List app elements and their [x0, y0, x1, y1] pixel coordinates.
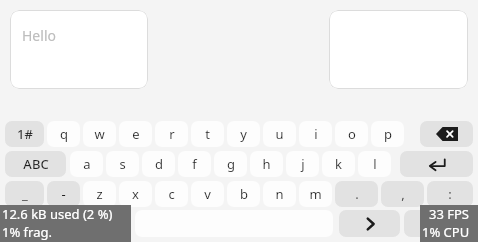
button[interactable]: q [47, 121, 80, 147]
button[interactable]: , [381, 181, 424, 207]
button[interactable]: Done [404, 210, 473, 237]
button[interactable]: m [299, 181, 332, 207]
staticText: s [119, 155, 126, 173]
button[interactable]: o [335, 121, 368, 147]
button[interactable]: c [155, 181, 188, 207]
button[interactable]: p [371, 121, 404, 147]
staticText: - [61, 185, 66, 203]
button[interactable]: f [178, 151, 211, 177]
button[interactable]: Enter [400, 151, 473, 177]
button[interactable]: 1# [5, 121, 44, 147]
button[interactable]: ABC [5, 151, 66, 177]
staticText: 33 FPS [429, 205, 470, 223]
button[interactable]: d [142, 151, 175, 177]
staticText: b [240, 185, 248, 203]
button[interactable]: _ [5, 181, 44, 207]
button[interactable]: w [83, 121, 116, 147]
staticText: c [168, 185, 175, 203]
button[interactable]: Previous [47, 210, 131, 237]
button[interactable]: r [155, 121, 188, 147]
staticText: z [96, 185, 103, 203]
staticText: w [94, 125, 105, 143]
staticText: t [205, 125, 210, 143]
staticText: a [83, 155, 91, 173]
staticText: l [373, 155, 377, 173]
button[interactable]: v [191, 181, 224, 207]
staticText: 1% CPU [422, 223, 470, 241]
staticText: j [301, 155, 305, 173]
button[interactable]: Hello [10, 10, 148, 89]
button[interactable]: - [47, 181, 80, 207]
staticText: n [275, 185, 284, 203]
staticText: _ [22, 185, 28, 203]
button[interactable]: : [427, 181, 473, 207]
staticText: f [192, 155, 197, 173]
button[interactable]: e [119, 121, 152, 147]
staticText: k [335, 155, 342, 173]
button[interactable]: y [227, 121, 260, 147]
button[interactable]: Switch keyboard [5, 210, 44, 237]
staticText: d [155, 155, 163, 173]
button[interactable]: . [335, 181, 378, 207]
button[interactable]: s [106, 151, 139, 177]
button[interactable]: j [286, 151, 319, 177]
staticText: g [227, 155, 235, 173]
staticText: x [132, 185, 139, 203]
staticText: 1% frag. [2, 223, 52, 241]
staticText: v [204, 185, 211, 203]
button[interactable]: z [83, 181, 116, 207]
staticText: . [355, 185, 359, 203]
staticText: : [448, 185, 452, 203]
staticText: o [348, 125, 356, 143]
staticText: , [401, 185, 405, 203]
button[interactable]: g [214, 151, 247, 177]
staticText: 1# [17, 125, 33, 143]
staticText: y [240, 125, 247, 143]
staticText: 12.6 kB used (2 %) [2, 205, 113, 223]
staticText: i [314, 125, 318, 143]
button[interactable]: a [70, 151, 103, 177]
staticText: Hello [22, 26, 56, 45]
button[interactable]: Backspace [420, 121, 473, 147]
staticText: h [262, 155, 271, 173]
button[interactable]: x [119, 181, 152, 207]
button[interactable] [329, 10, 468, 89]
button[interactable]: t [191, 121, 224, 147]
button[interactable]: Next [339, 210, 400, 237]
staticText: q [60, 125, 68, 143]
button[interactable]: h [250, 151, 283, 177]
button[interactable]: b [227, 181, 260, 207]
button[interactable]: n [263, 181, 296, 207]
staticText: m [309, 185, 322, 203]
button[interactable]: u [263, 121, 296, 147]
staticText: e [132, 125, 140, 143]
button[interactable]: k [322, 151, 355, 177]
staticText: p [384, 125, 392, 143]
staticText: u [275, 125, 284, 143]
button[interactable]: l [358, 151, 391, 177]
staticText: ABC [23, 155, 49, 173]
button[interactable]: i [299, 121, 332, 147]
staticText: r [169, 125, 175, 143]
